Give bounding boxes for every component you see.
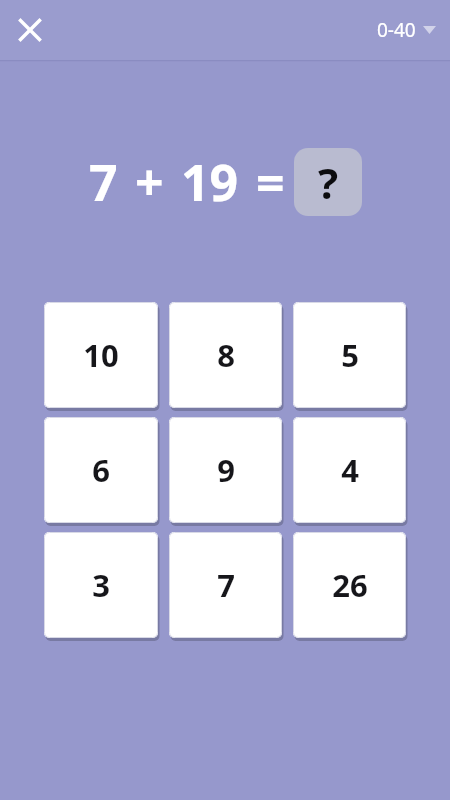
- staticText: +: [135, 148, 164, 216]
- button[interactable]: Close: [4, 4, 56, 56]
- staticText: 10: [83, 334, 119, 376]
- staticText: 7: [89, 148, 118, 216]
- button[interactable]: 6: [44, 417, 158, 523]
- staticText: 6: [92, 449, 110, 491]
- button[interactable]: 9: [169, 417, 282, 523]
- staticText: 8: [217, 334, 235, 376]
- staticText: 5: [341, 334, 359, 376]
- button[interactable]: 7: [169, 532, 282, 638]
- staticText: 7: [217, 564, 235, 606]
- staticText: 9: [217, 449, 235, 491]
- button[interactable]: 5: [293, 302, 406, 408]
- staticText: 0-40: [377, 17, 416, 43]
- staticText: 4: [341, 449, 359, 491]
- button[interactable]: 0-40: [371, 11, 442, 49]
- button[interactable]: 26: [293, 532, 406, 638]
- staticText: ?: [318, 154, 339, 211]
- staticText: 19: [181, 148, 239, 216]
- staticText: =: [256, 148, 285, 216]
- button[interactable]: 4: [293, 417, 406, 523]
- button[interactable]: 10: [44, 302, 158, 408]
- staticText: 26: [332, 564, 368, 606]
- staticText: 3: [92, 564, 110, 606]
- button[interactable]: 8: [169, 302, 282, 408]
- button[interactable]: Unknown answer: [294, 148, 362, 216]
- button[interactable]: 3: [44, 532, 158, 638]
